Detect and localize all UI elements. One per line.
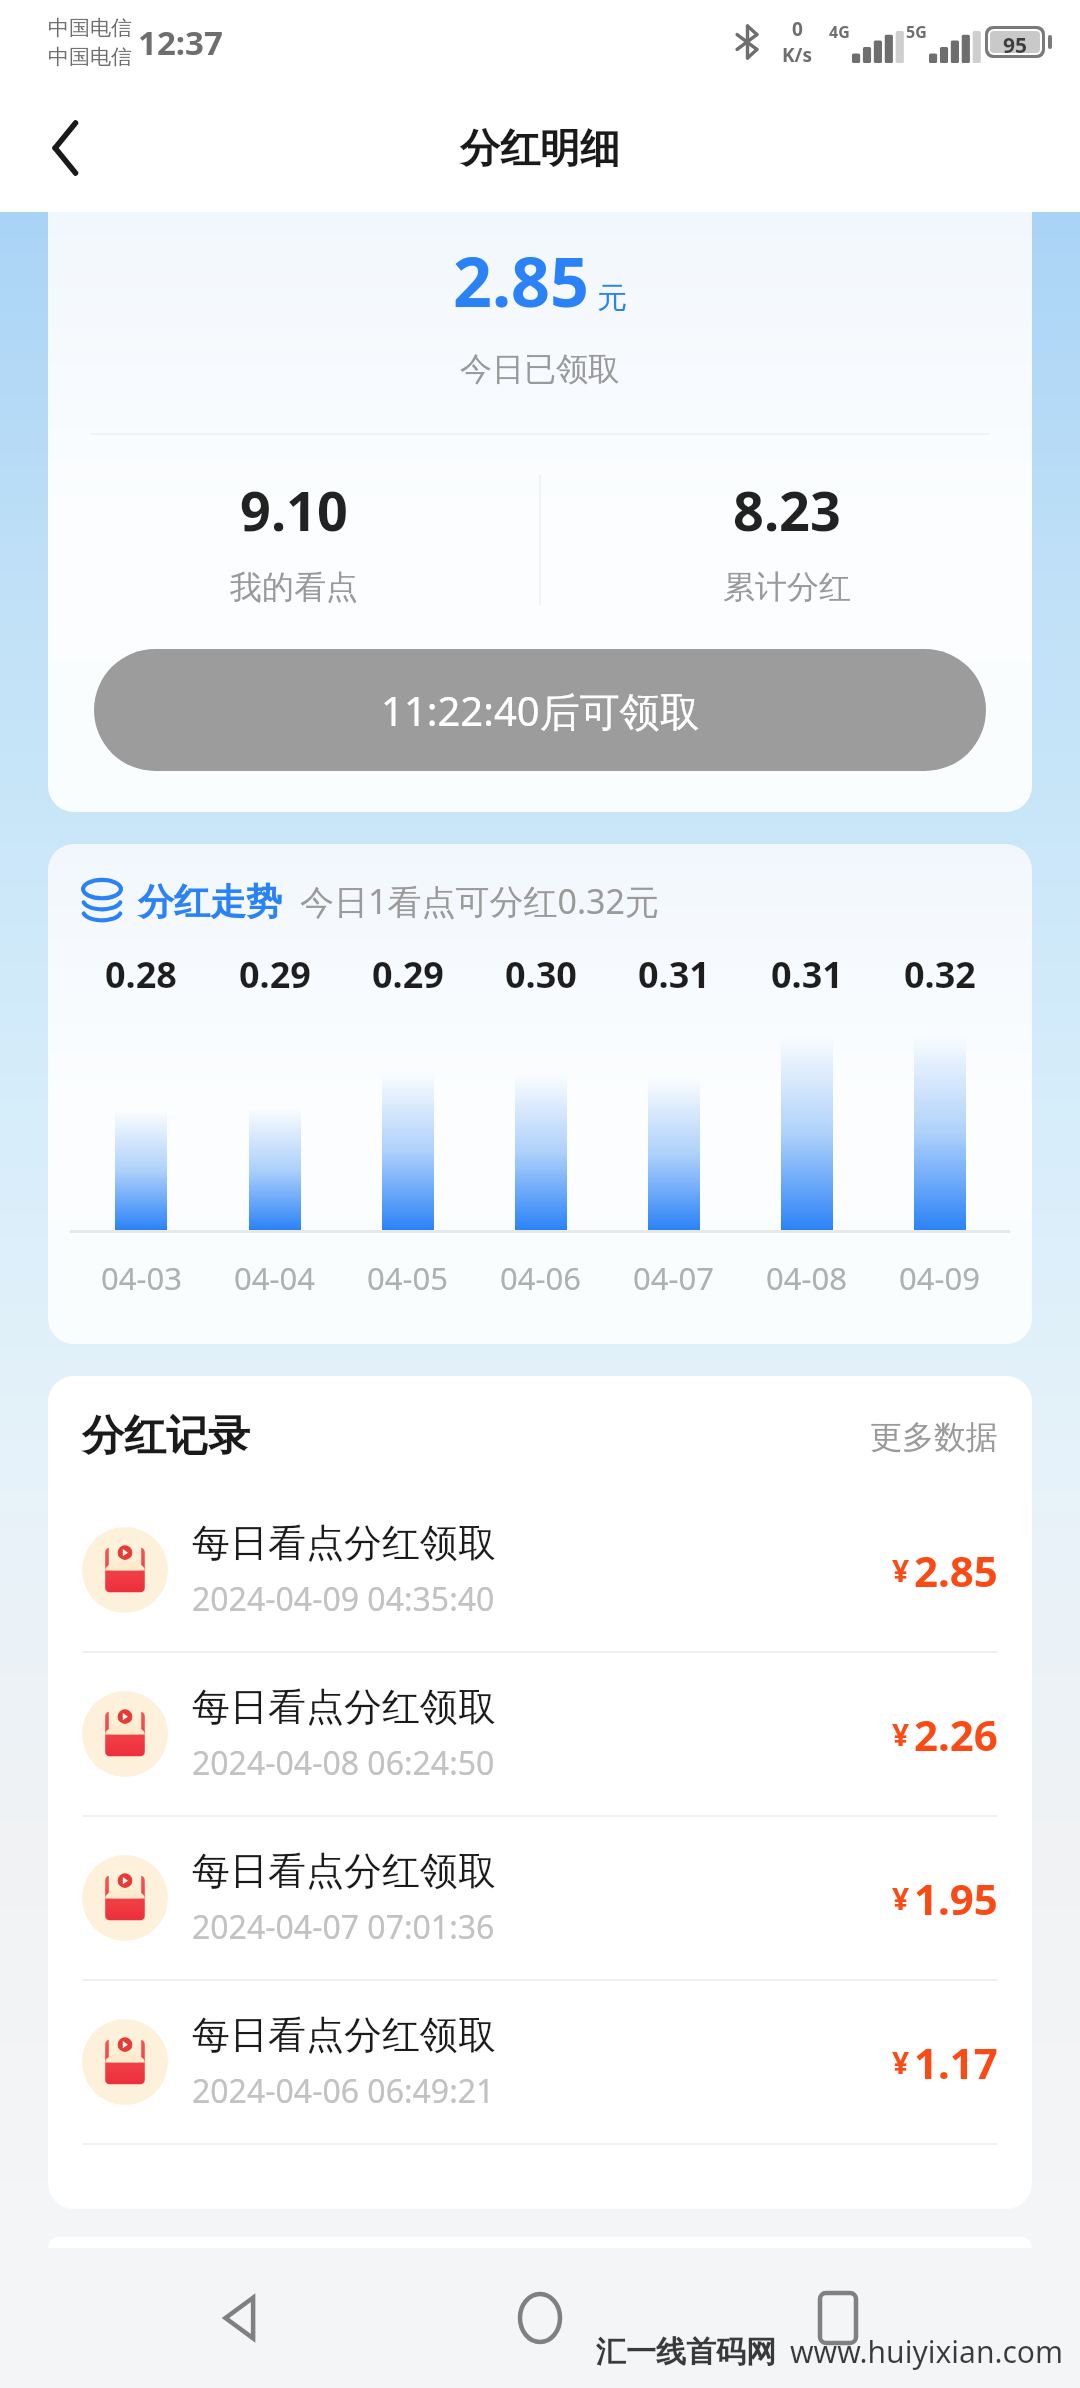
staticText: 0 — [792, 16, 803, 42]
staticText: 元 — [597, 279, 627, 317]
staticText: 04-08 — [766, 1257, 847, 1299]
staticText: ¥ — [892, 1550, 910, 1591]
staticText: 2.26 — [914, 1706, 998, 1763]
staticText: 更多数据 — [870, 1417, 998, 1457]
staticText: 0.29 — [239, 950, 311, 999]
staticText: ¥ — [892, 1714, 910, 1755]
button[interactable]: 更多数据 — [870, 1417, 998, 1457]
button[interactable]: 主页 — [485, 2263, 595, 2373]
staticText: 95 — [1003, 31, 1028, 53]
staticText: 4G — [829, 21, 850, 43]
staticText: 每日看点分红领取 — [192, 1847, 496, 1895]
staticText: 每日看点分红领取 — [192, 2011, 496, 2059]
staticText: 2.85 — [914, 1542, 998, 1599]
staticText: K/s — [782, 42, 813, 68]
button[interactable]: 每日看点分红领取 — [48, 1981, 1032, 2143]
button[interactable]: 每日看点分红领取 — [48, 1489, 1032, 1651]
staticText: 每日看点分红领取 — [192, 1683, 496, 1731]
staticText: 累计分红 — [723, 567, 851, 607]
button[interactable]: 返回 — [24, 106, 108, 190]
staticText: 中国电信 — [48, 44, 132, 70]
staticText: 04-04 — [234, 1257, 315, 1299]
staticText: 今日已领取 — [460, 349, 620, 389]
staticText: 0.31 — [638, 950, 710, 999]
staticText: 0.30 — [505, 950, 577, 999]
staticText: 9.10 — [240, 473, 348, 547]
staticText: 2024-04-08 06:24:50 — [192, 1741, 495, 1785]
staticText: 我的看点 — [230, 567, 358, 607]
staticText: 0.29 — [372, 950, 444, 999]
staticText: 04-06 — [500, 1257, 581, 1299]
staticText: 2.85 — [453, 234, 589, 327]
staticText: ¥ — [892, 2042, 910, 2083]
staticText: 分红明细 — [460, 123, 620, 173]
staticText: 8.23 — [733, 473, 841, 547]
staticText: 5G — [906, 21, 927, 43]
staticText: 04-09 — [899, 1257, 980, 1299]
staticText: 0.32 — [904, 950, 976, 999]
staticText: 0.31 — [771, 950, 843, 999]
button[interactable]: 每日看点分红领取 — [48, 1817, 1032, 1979]
staticText: 1.95 — [914, 1870, 998, 1927]
staticText: ¥ — [892, 1878, 910, 1919]
button[interactable]: 11:22:40后可领取 — [94, 649, 986, 771]
staticText: 11:22:40后可领取 — [381, 683, 700, 738]
staticText: 中国电信 — [48, 15, 132, 41]
button[interactable]: 最近任务 — [783, 2263, 893, 2373]
staticText: 12:37 — [138, 20, 223, 65]
staticText: 1.17 — [914, 2034, 998, 2091]
staticText: 04-03 — [101, 1257, 182, 1299]
staticText: 每日看点分红领取 — [192, 1519, 496, 1567]
staticText: 04-07 — [633, 1257, 714, 1299]
staticText: www.huiyixian.com — [790, 2331, 1064, 2372]
staticText: 今日1看点可分红0.32元 — [300, 878, 659, 924]
button[interactable]: 每日看点分红领取 — [48, 1653, 1032, 1815]
staticText: 分红走势 — [138, 879, 282, 924]
staticText: 2024-04-06 06:49:21 — [192, 2069, 495, 2113]
button[interactable]: 返回 — [188, 2263, 298, 2373]
staticText: 0.28 — [105, 950, 177, 999]
staticText: 汇一线首码网 — [596, 2333, 776, 2371]
staticText: 2024-04-09 04:35:40 — [192, 1577, 495, 1621]
staticText: 分红记录 — [82, 1410, 250, 1463]
staticText: 2024-04-07 07:01:36 — [192, 1905, 495, 1949]
staticText: 04-05 — [367, 1257, 448, 1299]
